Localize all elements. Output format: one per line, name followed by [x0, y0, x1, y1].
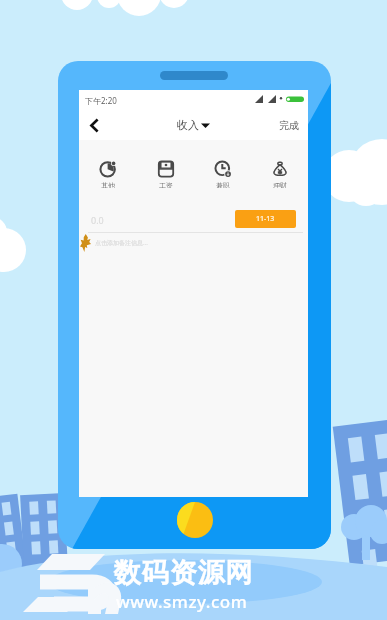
button[interactable]: 收入: [171, 110, 216, 140]
button[interactable]: Back: [79, 110, 109, 140]
button[interactable]: 理财: [251, 160, 308, 188]
button[interactable]: 点击添加备注信息...: [79, 233, 308, 253]
button[interactable]: Home: [177, 502, 213, 538]
button[interactable]: 完成: [270, 110, 308, 140]
staticText: 理财: [273, 181, 287, 188]
staticText: 11-13: [256, 214, 275, 224]
staticText: 完成: [279, 119, 299, 132]
staticText: 点击添加备注信息...: [95, 239, 148, 247]
button[interactable]: 11-13: [235, 210, 296, 228]
button[interactable]: 其他: [79, 160, 137, 188]
staticText: 其他: [101, 181, 115, 188]
staticText: www.smzy.com: [116, 590, 248, 613]
staticText: 数码资源网: [113, 556, 253, 590]
staticText: 兼职: [216, 181, 230, 188]
button[interactable]: 工资: [137, 160, 194, 188]
staticText: 工资: [159, 181, 173, 188]
staticText: 收入: [177, 118, 199, 132]
staticText: 0.0: [91, 214, 104, 226]
button[interactable]: 兼职: [194, 160, 251, 188]
staticText: 下午2:20: [85, 95, 117, 106]
